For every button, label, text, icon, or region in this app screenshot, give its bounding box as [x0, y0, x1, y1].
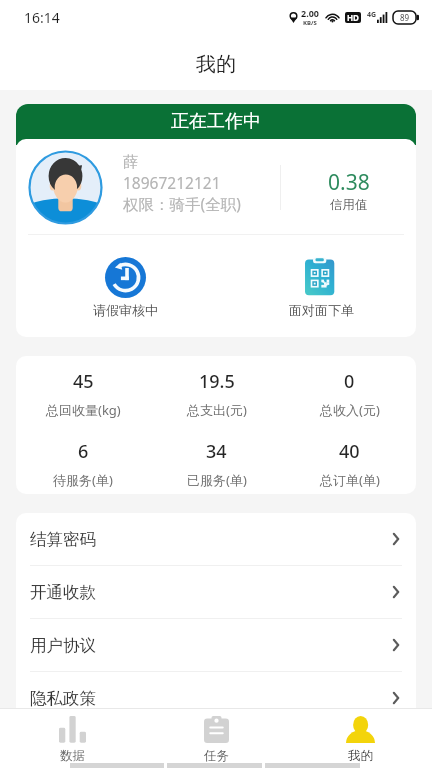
staticText: 请假审核中 [93, 302, 158, 318]
button[interactable]: 任务 [144, 716, 288, 763]
button[interactable]: 隐私政策 [16, 672, 416, 725]
staticText: 任务 [204, 748, 229, 763]
staticText: 开通收款 [30, 582, 393, 603]
staticText: 总回收量(kg) [46, 401, 121, 419]
staticText: 4G [367, 10, 377, 20]
staticText: KB/S [303, 19, 317, 27]
staticText: 正在工作中 [171, 110, 261, 133]
staticText: 18967212121 [123, 172, 221, 193]
button[interactable]: 关于我们 [16, 725, 416, 753]
staticText: 面对面下单 [289, 302, 354, 318]
button[interactable]: 面对面下单 [271, 257, 371, 318]
staticText: 数据 [60, 748, 85, 763]
button[interactable]: 请假审核中 [75, 257, 175, 318]
staticText: 权限：骑手(全职) [123, 193, 241, 214]
button[interactable]: 34 [150, 439, 283, 489]
staticText: 总收入(元) [320, 401, 380, 419]
staticText: 隐私政策 [30, 688, 393, 709]
button[interactable]: 19.5 [150, 369, 283, 419]
button[interactable]: 45 [16, 369, 150, 419]
staticText: 总订单(单) [320, 471, 380, 489]
button[interactable]: 我的 [288, 716, 432, 763]
staticText: 0 [344, 369, 355, 394]
button[interactable]: 结算密码 [16, 513, 416, 566]
staticText: 信用值 [330, 197, 368, 213]
staticText: 19.5 [199, 369, 235, 394]
staticText: 34 [206, 439, 227, 464]
button[interactable]: 数据 [0, 716, 144, 763]
staticText: 0.38 [328, 168, 370, 197]
button[interactable]: 开通收款 [16, 566, 416, 619]
staticText: 已服务(单) [187, 471, 247, 489]
button[interactable]: 40 [283, 439, 416, 489]
button[interactable]: 6 [16, 439, 150, 489]
staticText: 89 [400, 12, 410, 23]
staticText: 16:14 [24, 8, 60, 27]
staticText: 关于我们 [30, 729, 393, 750]
staticText: 我的 [196, 52, 236, 77]
button[interactable]: 用户协议 [16, 619, 416, 672]
staticText: 2.00 [301, 7, 319, 19]
staticText: 6 [78, 439, 89, 464]
staticText: 总支出(元) [187, 401, 247, 419]
staticText: 用户协议 [30, 635, 393, 656]
staticText: 结算密码 [30, 529, 393, 550]
staticText: HD [347, 12, 359, 23]
staticText: 我的 [348, 748, 373, 763]
button[interactable]: 0 [283, 369, 416, 419]
staticText: 40 [339, 439, 360, 464]
staticText: 待服务(单) [53, 471, 113, 489]
staticText: 45 [73, 369, 94, 394]
staticText: 薛 [123, 152, 139, 172]
